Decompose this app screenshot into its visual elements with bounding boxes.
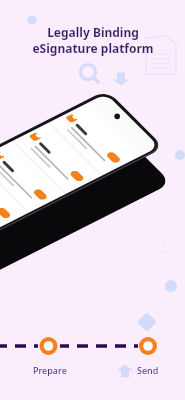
button[interactable]: Send xyxy=(137,364,159,376)
staticText: Prepare xyxy=(33,364,67,376)
staticText: eSignature platform xyxy=(32,40,154,56)
staticText: Legally Binding xyxy=(47,24,139,40)
staticText: Send xyxy=(137,364,159,376)
button[interactable]: Prepare xyxy=(33,364,67,376)
